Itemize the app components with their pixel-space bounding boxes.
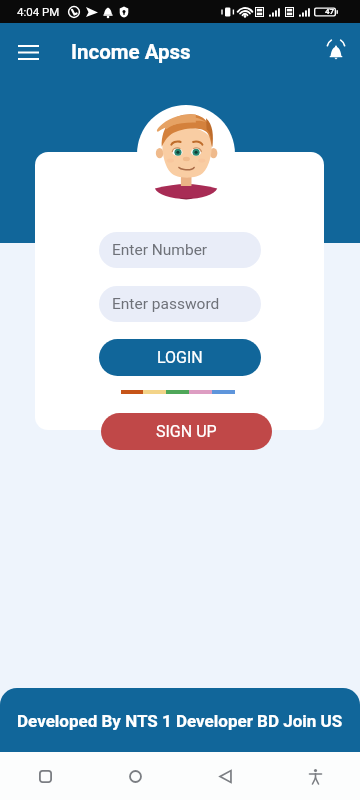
staticText: Enter Number <box>112 241 208 259</box>
button[interactable]: Enter Number <box>99 232 261 268</box>
button[interactable]: Recent apps <box>0 752 90 800</box>
button[interactable]: SIGN UP <box>101 413 272 450</box>
button[interactable]: Enter password <box>99 286 261 322</box>
staticText: SIGN UP <box>156 422 217 441</box>
button[interactable]: LOGIN <box>99 339 261 376</box>
staticText: 4:04 PM <box>17 5 60 18</box>
staticText: 47 <box>325 7 335 16</box>
button[interactable]: Back <box>180 752 270 800</box>
staticText: Income Apss <box>71 40 191 64</box>
button[interactable]: Developed By NTS 1 Developer BD Join US <box>0 688 360 752</box>
staticText: Enter password <box>112 295 220 313</box>
staticText: Developed By NTS 1 Developer BD Join US <box>17 711 343 731</box>
button[interactable]: Open navigation menu <box>8 32 48 72</box>
button[interactable]: Home <box>90 752 180 800</box>
staticText: LOGIN <box>157 348 203 367</box>
button[interactable]: Accessibility <box>270 752 360 800</box>
button[interactable]: Notifications <box>316 32 356 72</box>
